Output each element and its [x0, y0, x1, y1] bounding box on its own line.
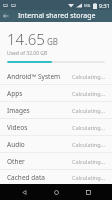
button[interactable]: Other: [0, 153, 112, 169]
button[interactable]: Recent apps: [80, 184, 96, 200]
staticText: Android™ System: [7, 72, 71, 81]
staticText: Cached data: [7, 173, 71, 182]
staticText: Other: [7, 157, 71, 166]
button[interactable]: Back: [16, 184, 32, 200]
staticText: Calculating…: [71, 124, 105, 131]
button[interactable]: Cached data: [0, 170, 112, 184]
button[interactable]: Images: [0, 102, 112, 118]
staticText: MA: [84, 3, 91, 8]
button[interactable]: Videos: [0, 119, 112, 135]
staticText: Audio: [7, 140, 71, 149]
staticText: Videos: [7, 123, 71, 132]
staticText: Images: [7, 106, 71, 115]
button[interactable]: Apps: [0, 85, 112, 101]
staticText: Calculating…: [71, 141, 105, 148]
staticText: Calculating…: [71, 158, 105, 165]
button[interactable]: Android™ System: [0, 68, 112, 84]
button[interactable]: Audio: [0, 136, 112, 152]
staticText: Calculating…: [71, 174, 105, 181]
staticText: Calculating…: [71, 73, 105, 80]
staticText: Internal shared storage: [18, 11, 96, 21]
staticText: Calculating…: [71, 107, 105, 114]
staticText: 14.65: [7, 29, 45, 49]
staticText: Calculating…: [71, 90, 105, 97]
staticText: Used of 32.00 GB: [7, 50, 48, 57]
staticText: 9:31: [99, 2, 110, 9]
button[interactable]: Back: [0, 10, 12, 22]
button[interactable]: Home: [48, 184, 64, 200]
staticText: GB: [47, 36, 59, 47]
staticText: Apps: [7, 89, 71, 98]
